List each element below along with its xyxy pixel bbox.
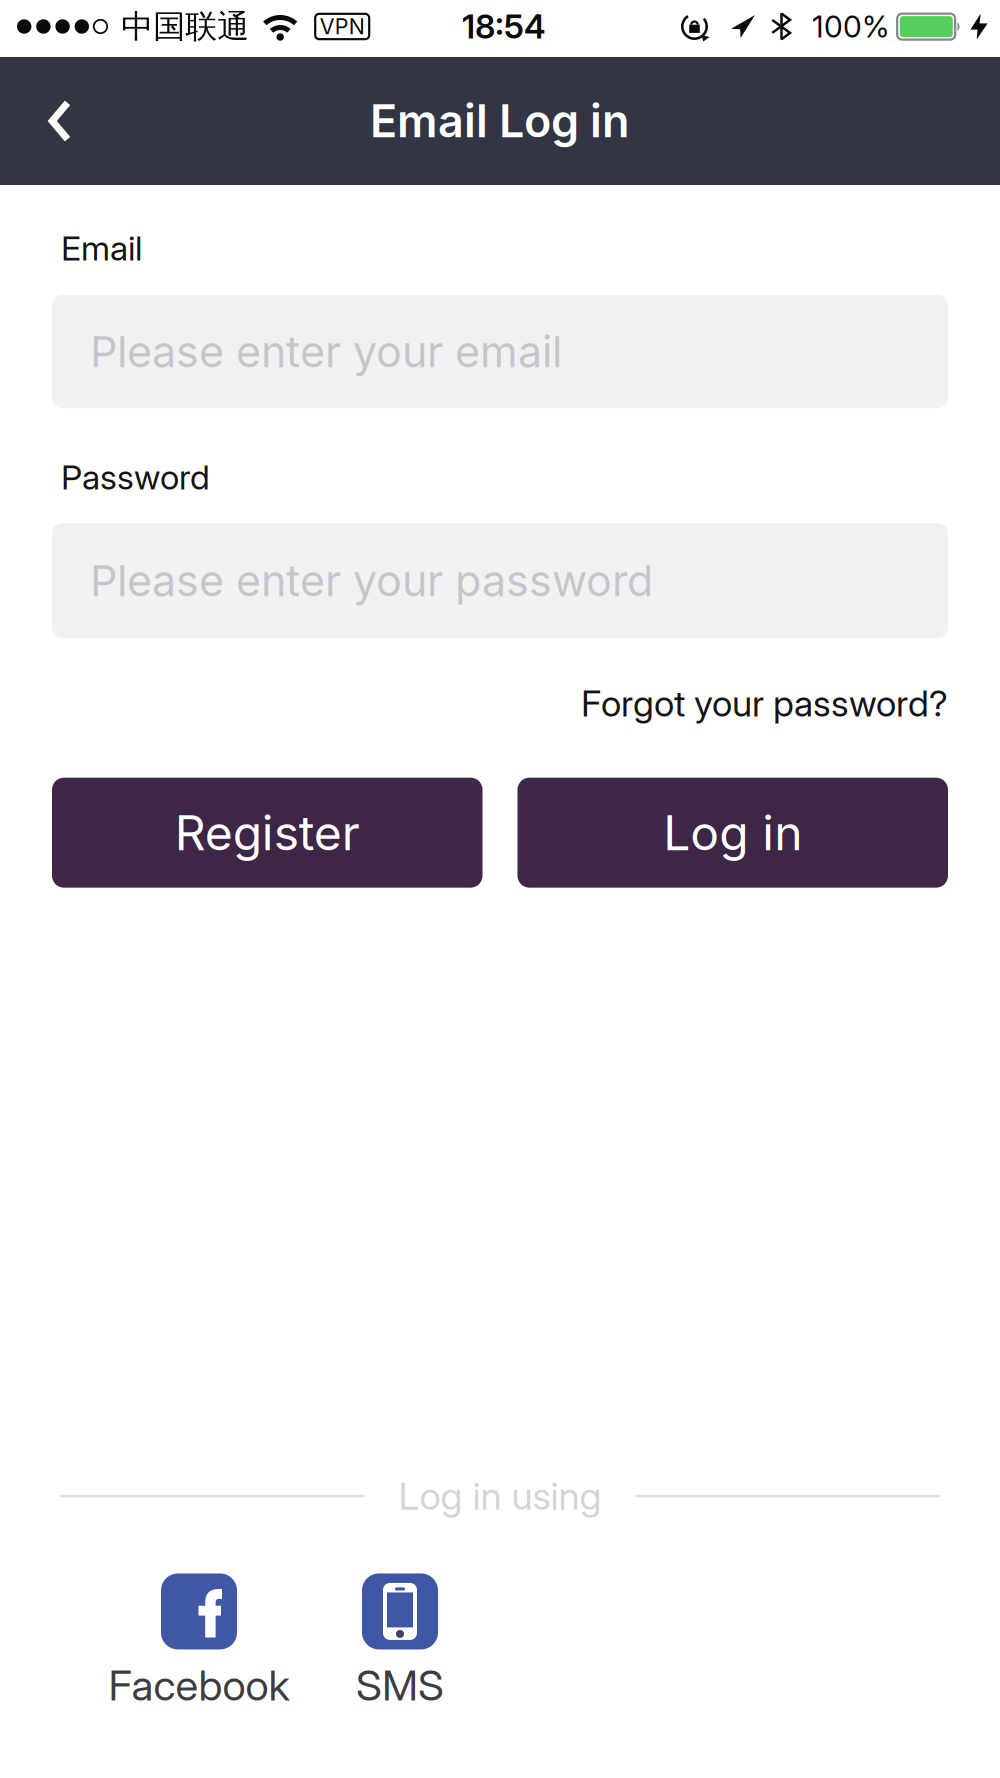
- button[interactable]: Log in with Facebook: [108, 1573, 289, 1710]
- staticText: SMS: [356, 1660, 444, 1710]
- staticText: Email: [61, 228, 142, 268]
- button[interactable]: Forgot your password?: [581, 682, 948, 725]
- staticText: Please enter your email: [90, 326, 562, 377]
- staticText: 中国联通: [121, 7, 249, 46]
- button[interactable]: Log in with SMS: [356, 1573, 444, 1710]
- staticText: 100%: [812, 9, 889, 44]
- staticText: Register: [175, 804, 360, 861]
- staticText: Forgot your password?: [581, 682, 948, 725]
- staticText: Facebook: [108, 1660, 289, 1710]
- button[interactable]: Log in: [517, 778, 948, 888]
- button[interactable]: Register: [52, 778, 482, 888]
- staticText: VPN: [320, 14, 365, 39]
- staticText: Log in: [663, 804, 802, 861]
- staticText: Log in using: [398, 1474, 601, 1518]
- button[interactable]: Please enter your password: [52, 523, 948, 638]
- staticText: 18:54: [462, 7, 546, 46]
- staticText: Please enter your password: [90, 555, 653, 606]
- staticText: Email Log in: [370, 94, 630, 148]
- button[interactable]: Please enter your email: [52, 295, 948, 408]
- staticText: Password: [61, 457, 210, 497]
- button[interactable]: Back: [0, 67, 101, 175]
